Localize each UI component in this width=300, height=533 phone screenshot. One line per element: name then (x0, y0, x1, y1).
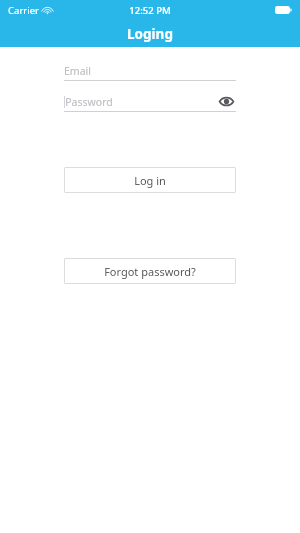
staticText: Loging (127, 25, 173, 43)
button[interactable]: Password (64, 92, 236, 111)
staticText: Forgot password? (104, 264, 196, 279)
staticText: 12:52 PM (129, 4, 171, 17)
button[interactable]: Email (64, 61, 236, 80)
button[interactable]: Log in (64, 167, 236, 193)
button[interactable]: Forgot password? (64, 258, 236, 284)
staticText: Password (65, 95, 113, 109)
button[interactable]: Show password (216, 92, 236, 111)
staticText: Carrier (8, 4, 39, 17)
staticText: Log in (134, 173, 166, 188)
staticText: Email (64, 64, 91, 78)
